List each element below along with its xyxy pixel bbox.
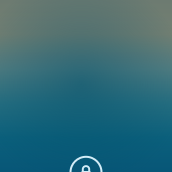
button[interactable]: Unlock: [0, 0, 172, 172]
